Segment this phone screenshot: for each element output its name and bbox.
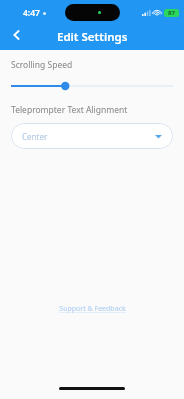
staticText: Center [22, 131, 48, 142]
button[interactable]: Center [11, 123, 173, 149]
button[interactable]: Support & Feedback [53, 301, 132, 317]
staticText: Edit Settings [57, 29, 128, 45]
staticText: 4:47 [23, 7, 40, 19]
button[interactable]: Back [4, 22, 30, 48]
staticText: Support & Feedback [59, 304, 126, 314]
staticText: Scrolling Speed [11, 59, 73, 71]
button[interactable]: Scrolling speed slider [11, 78, 173, 94]
staticText: 87 [168, 9, 175, 17]
staticText: Teleprompter Text Alignment [11, 104, 128, 116]
